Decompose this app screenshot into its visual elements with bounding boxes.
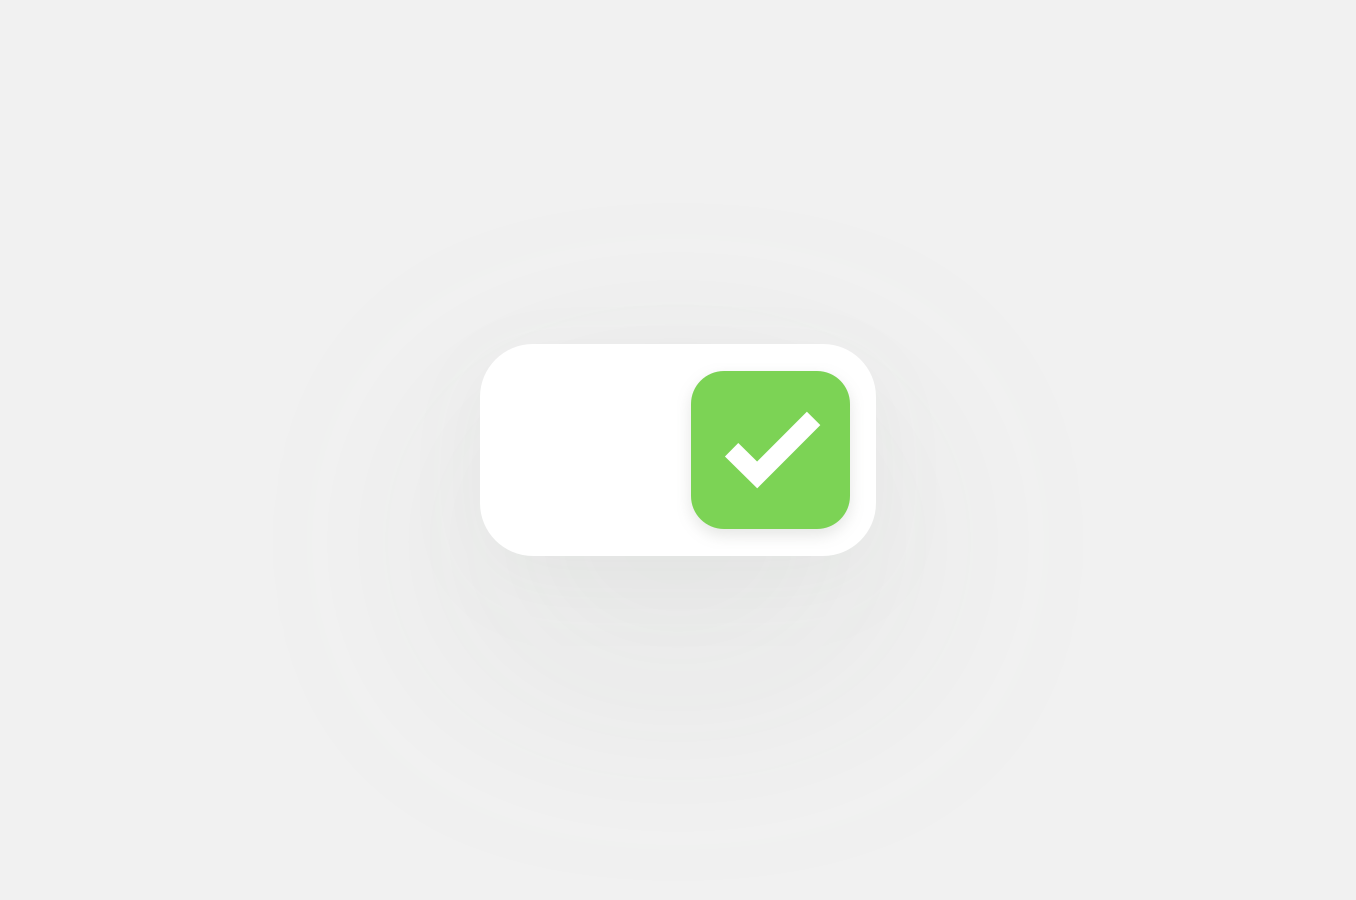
button[interactable]: Enabled [480,344,876,556]
